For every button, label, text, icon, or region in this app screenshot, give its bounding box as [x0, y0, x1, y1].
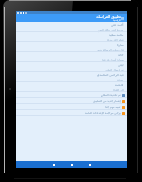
button[interactable]: يرجى مراجعة الإعدادات العامة [16, 110, 127, 116]
staticText: يرجى مراجعة الإعدادات العامة [85, 111, 121, 115]
button[interactable]: محمد سعيد [16, 32, 127, 42]
button[interactable]: سارة [16, 42, 127, 52]
button[interactable]: أحمد علي [16, 22, 127, 32]
staticText: تنبيه مهم جدا [105, 105, 121, 109]
button[interactable]: Menu [120, 16, 125, 21]
staticText: عبد الرحمن المحمدي [97, 73, 124, 77]
staticText: موعد [117, 78, 124, 81]
button[interactable]: عبد الرحمن المحمدي [16, 72, 127, 82]
button[interactable]: تم تحديث النظام [16, 92, 127, 98]
staticText: سارة [117, 43, 124, 47]
button[interactable]: إشعار جديد من التطبيق [16, 98, 127, 104]
button[interactable]: خالد [16, 52, 127, 62]
button[interactable]: Home [68, 161, 75, 168]
staticText: خالد [118, 53, 124, 57]
staticText: فاطمة [115, 83, 124, 87]
staticText: الرئيسية [112, 19, 121, 22]
staticText: إشعار جديد من التطبيق [93, 99, 121, 103]
staticText: ليلى [118, 63, 124, 67]
staticText: تطبيق المراسلة [96, 14, 121, 19]
staticText: تم إرسال الملف [105, 68, 124, 72]
button[interactable]: Back [50, 161, 57, 168]
button[interactable]: فاطمة [16, 82, 127, 92]
staticText: سوف أتصل بك غدا [102, 58, 124, 62]
staticText: شكرا لك جزيلا [107, 38, 124, 42]
button[interactable]: تنبيه مهم جدا [16, 104, 127, 110]
staticText: مرحبا كيف حالك اليوم [98, 28, 124, 32]
button[interactable]: Recents [86, 161, 93, 168]
staticText: تم تحديث النظام [101, 93, 121, 97]
button[interactable]: ليلى [16, 62, 127, 72]
staticText: إلى اللقاء [113, 88, 124, 92]
staticText: أحمد علي [111, 23, 124, 27]
staticText: محمد سعيد [109, 33, 124, 37]
staticText: هل وصلت الرسالة بخير [97, 48, 124, 52]
